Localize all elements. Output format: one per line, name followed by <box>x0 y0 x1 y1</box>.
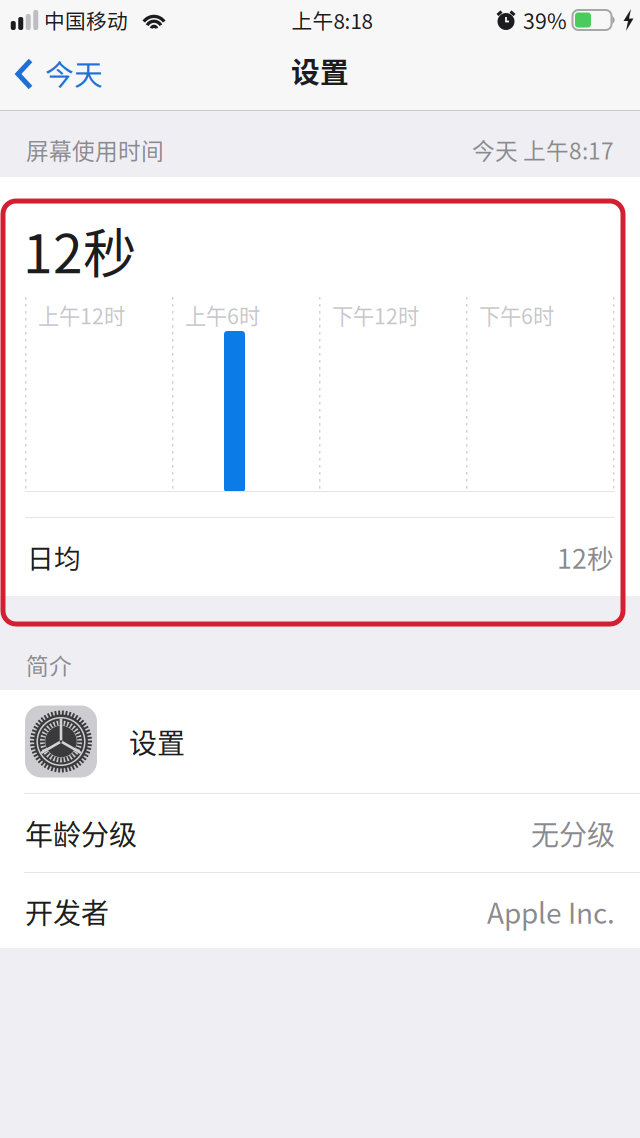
button[interactable]: 设置 <box>0 690 640 793</box>
staticText: 日均 <box>27 538 81 576</box>
staticText: 上午6时 <box>185 300 260 330</box>
staticText: 39% <box>523 5 567 35</box>
staticText: 下午12时 <box>332 300 419 330</box>
staticText: 今天 <box>45 52 103 94</box>
staticText: 今天 上午8:17 <box>472 133 614 166</box>
staticText: 上午8:18 <box>291 5 372 35</box>
staticText: 年龄分级 <box>25 813 137 853</box>
staticText: 上午12时 <box>38 300 125 330</box>
staticText: 设置 <box>129 721 185 762</box>
staticText: 屏幕使用时间 <box>26 133 164 166</box>
staticText: 12秒 <box>557 538 614 576</box>
staticText: 无分级 <box>531 813 615 853</box>
staticText: 中国移动 <box>44 5 128 35</box>
staticText: 设置 <box>291 50 349 91</box>
button[interactable]: 今天 <box>0 40 115 110</box>
staticText: 12秒 <box>23 211 136 289</box>
staticText: 下午6时 <box>479 300 554 330</box>
staticText: 开发者 <box>25 891 109 932</box>
staticText: 简介 <box>26 648 72 681</box>
staticText: Apple Inc. <box>487 891 615 932</box>
